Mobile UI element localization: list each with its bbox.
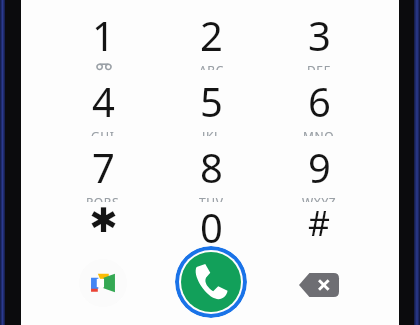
staticText: WXYZ (302, 194, 337, 202)
button[interactable]: Call (175, 246, 247, 318)
button[interactable]: 3 (265, 8, 373, 70)
button[interactable]: Backspace (292, 268, 346, 302)
staticText: 3 (308, 8, 331, 62)
button[interactable]: 2 (157, 8, 265, 70)
button[interactable]: Video call with Google Meet (79, 259, 127, 307)
button[interactable]: 6 (265, 74, 373, 136)
staticText: 8 (200, 140, 223, 194)
staticText: # (308, 200, 330, 246)
staticText: 0 (200, 200, 223, 254)
staticText: 6 (308, 74, 331, 128)
staticText: 1 (92, 8, 115, 62)
button[interactable]: 7 (49, 140, 157, 202)
staticText: 2 (200, 8, 223, 62)
button[interactable]: 5 (157, 74, 265, 136)
button[interactable]: 0 (157, 200, 265, 262)
staticText: 5 (200, 74, 223, 128)
button[interactable]: ✱ (49, 200, 157, 262)
staticText: TUV (199, 194, 224, 202)
staticText: GHI (91, 128, 115, 136)
button[interactable]: 4 (49, 74, 157, 136)
staticText: 9 (308, 140, 331, 194)
staticText: PQRS (86, 194, 120, 202)
staticText: MNO (303, 128, 335, 136)
button[interactable]: 8 (157, 140, 265, 202)
button[interactable]: 1 (49, 8, 157, 70)
staticText: 7 (92, 140, 115, 194)
staticText: ✱ (89, 200, 118, 240)
button[interactable]: 9 (265, 140, 373, 202)
button[interactable]: # (265, 200, 373, 262)
staticText: JKL (202, 128, 221, 136)
staticText: DEF (307, 62, 331, 70)
staticText: 4 (92, 74, 115, 128)
staticText: ABC (199, 62, 224, 70)
